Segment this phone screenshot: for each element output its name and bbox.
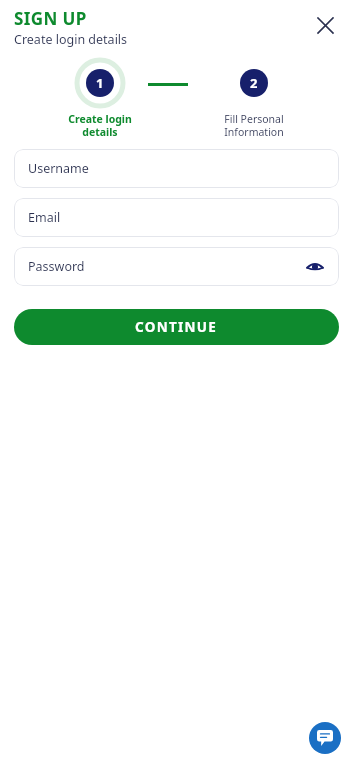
button[interactable]: Username xyxy=(14,149,339,188)
staticText: 1 xyxy=(96,74,104,92)
staticText: Create login details xyxy=(58,112,142,139)
staticText: CONTINUE xyxy=(135,318,218,336)
staticText: 2 xyxy=(250,74,258,92)
button[interactable]: CONTINUE xyxy=(14,309,339,345)
staticText: Create login details xyxy=(14,31,128,48)
staticText: Username xyxy=(28,160,89,177)
button[interactable]: Close xyxy=(307,7,343,43)
staticText: Email xyxy=(28,209,61,226)
button[interactable]: Chat support xyxy=(309,722,341,754)
button[interactable]: 1 xyxy=(58,55,142,139)
staticText: SIGN UP xyxy=(14,7,87,30)
staticText: Password xyxy=(28,258,85,275)
button[interactable]: 2 xyxy=(212,55,296,139)
button[interactable]: Show password xyxy=(303,255,327,279)
staticText: Fill Personal Information xyxy=(212,112,296,139)
button[interactable]: Password xyxy=(14,247,339,286)
button[interactable]: Email xyxy=(14,198,339,237)
